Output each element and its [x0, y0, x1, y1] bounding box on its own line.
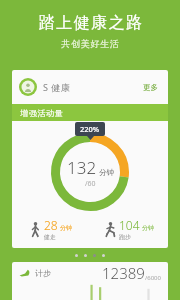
staticText: 28 [44, 217, 58, 233]
staticText: 计步 [35, 268, 51, 278]
staticText: 分钟 [99, 168, 114, 177]
button[interactable]: S Health [12, 70, 168, 104]
staticText: 12389 [102, 263, 145, 283]
staticText: 分钟 [60, 224, 72, 232]
other: Walking [30, 222, 41, 237]
other: Running [105, 222, 116, 237]
staticText: 踏上健康之路 [38, 13, 143, 33]
staticText: /6000 [145, 274, 161, 282]
staticText: 分钟 [142, 224, 154, 232]
staticText: /60 [85, 179, 96, 189]
button[interactable]: 更多 [140, 80, 161, 95]
button[interactable]: Steps [12, 262, 168, 300]
staticText: 增强活动量 [20, 108, 63, 118]
staticText: 220% [80, 124, 100, 134]
other: Steps [19, 269, 30, 277]
staticText: 104 [119, 217, 140, 233]
staticText: 更多 [143, 83, 158, 92]
staticText: S 健康 [43, 81, 71, 93]
staticText: 跑步 [119, 233, 131, 241]
button[interactable]: Running [90, 215, 168, 243]
button[interactable]: 132 [51, 133, 129, 211]
button[interactable]: Walking [12, 215, 90, 243]
staticText: 共创美好生活 [61, 38, 120, 49]
staticText: 132 [67, 156, 97, 179]
other: S Health [19, 78, 37, 96]
staticText: 健走 [44, 233, 56, 241]
button[interactable]: 增强活动量 [12, 104, 168, 121]
